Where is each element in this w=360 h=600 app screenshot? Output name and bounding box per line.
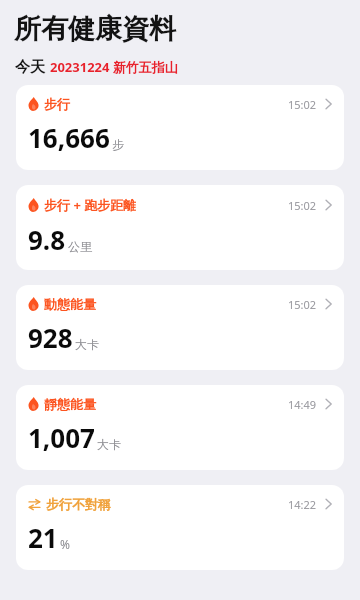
staticText: 14:22 <box>288 497 317 512</box>
staticText: 大卡 <box>75 337 99 352</box>
staticText: 步 <box>112 137 124 152</box>
staticText: 20231224 新竹五指山 <box>50 58 178 76</box>
button[interactable]: 步行 + 跑步距離 <box>16 185 344 270</box>
button[interactable]: 動態能量 <box>16 285 344 370</box>
staticText: 15:02 <box>288 198 317 213</box>
staticText: 公里 <box>68 239 92 254</box>
button[interactable]: 靜態能量 <box>16 385 344 470</box>
staticText: 步行不對稱 <box>46 496 111 512</box>
staticText: 步行 + 跑步距離 <box>44 196 137 214</box>
button[interactable]: 步行 <box>16 85 344 170</box>
staticText: 16,666 <box>28 120 110 155</box>
staticText: 9.8 <box>28 222 66 257</box>
staticText: 21 <box>28 520 58 555</box>
staticText: 步行 <box>44 96 70 112</box>
staticText: % <box>60 536 70 552</box>
staticText: 大卡 <box>97 437 121 452</box>
staticText: 動態能量 <box>44 296 96 312</box>
staticText: 靜態能量 <box>44 396 96 412</box>
staticText: 今天 <box>15 58 45 77</box>
staticText: 15:02 <box>288 297 317 312</box>
staticText: 15:02 <box>288 97 317 112</box>
staticText: 928 <box>28 320 73 355</box>
staticText: 1,007 <box>28 420 95 455</box>
staticText: 所有健康資料 <box>14 12 176 46</box>
other: Walking asymmetry <box>28 498 41 511</box>
staticText: 14:49 <box>288 397 317 412</box>
button[interactable]: Walking asymmetry <box>16 485 344 570</box>
